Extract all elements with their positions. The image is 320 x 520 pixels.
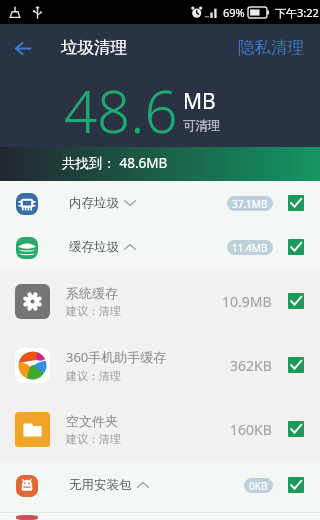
staticText: 362KB — [230, 356, 272, 375]
button[interactable]: Selected — [288, 357, 304, 373]
staticText: 空文件夹 — [66, 413, 118, 429]
button[interactable]: 空文件夹 — [0, 397, 320, 461]
staticText: 缓存垃圾 — [69, 239, 119, 255]
staticText: 下午3:22 — [275, 5, 319, 20]
button[interactable]: Selected — [288, 477, 304, 493]
staticText: 69% — [223, 5, 245, 20]
staticText: 11.4MB — [232, 241, 268, 255]
staticText: 48.6 — [64, 71, 178, 147]
staticText: 10.9MB — [222, 292, 272, 311]
button[interactable] — [0, 515, 320, 520]
staticText: 垃圾清理 — [61, 37, 127, 58]
button[interactable]: Selected — [288, 239, 304, 255]
button[interactable]: 360手机助手缓存 — [0, 333, 320, 397]
button[interactable]: 隐私清理 — [238, 37, 304, 58]
staticText: 0KB — [249, 479, 268, 493]
staticText: 隐私清理 — [238, 37, 304, 58]
staticText: 无用安装包 — [69, 477, 132, 493]
staticText: 内存垃圾 — [69, 195, 119, 211]
button[interactable]: Back — [8, 36, 38, 60]
staticText: 160KB — [230, 420, 272, 439]
button[interactable]: 缓存垃圾 — [0, 225, 320, 269]
staticText: 360手机助手缓存 — [66, 348, 167, 366]
staticText: 37.1MB — [232, 197, 268, 211]
staticText: 建议：清理 — [66, 304, 121, 318]
staticText: 系统缓存 — [66, 285, 118, 301]
button[interactable]: 系统缓存 — [0, 269, 320, 333]
staticText: 建议：清理 — [66, 432, 121, 446]
button[interactable]: 无用安装包 — [0, 463, 320, 507]
button[interactable]: Selected — [288, 195, 304, 211]
staticText: MB — [183, 87, 216, 116]
staticText: 可清理 — [183, 118, 221, 134]
staticText: 共找到： 48.6MB — [62, 154, 168, 172]
button[interactable]: 内存垃圾 — [0, 181, 320, 225]
button[interactable]: Selected — [288, 293, 304, 309]
button[interactable]: Selected — [288, 421, 304, 437]
staticText: 建议：清理 — [66, 369, 121, 383]
